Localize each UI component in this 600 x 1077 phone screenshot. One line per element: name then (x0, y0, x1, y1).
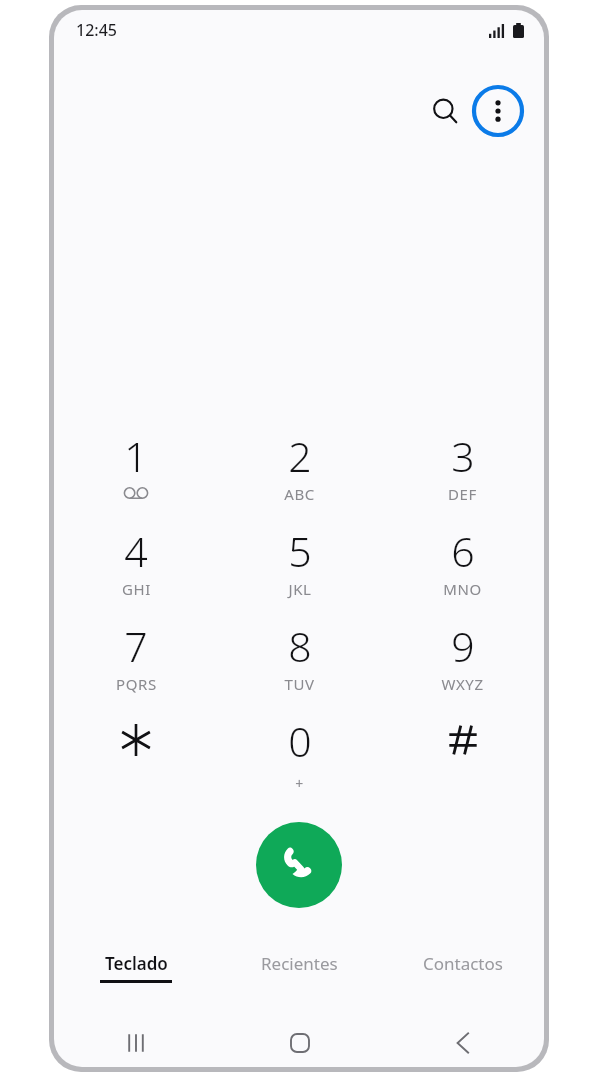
button[interactable]: More options (469, 82, 527, 140)
staticText: WXYZ (441, 674, 484, 694)
staticText: 12:45 (76, 19, 117, 41)
button[interactable] (54, 713, 218, 808)
button[interactable]: Back (381, 1020, 544, 1066)
button[interactable]: 7 (54, 618, 218, 713)
button[interactable]: 6 (381, 523, 544, 618)
button[interactable]: Search (421, 87, 469, 135)
button[interactable]: 5 (218, 523, 381, 618)
button[interactable]: 8 (218, 618, 381, 713)
staticText: PQRS (116, 674, 157, 694)
staticText: MNO (443, 579, 482, 599)
button[interactable]: 3 (381, 428, 544, 523)
staticText: GHI (122, 579, 151, 599)
button[interactable] (381, 713, 544, 808)
staticText: Recientes (261, 952, 338, 975)
staticText: 2 (288, 428, 312, 484)
button[interactable]: 2 (218, 428, 381, 523)
button[interactable]: 4 (54, 523, 218, 618)
button[interactable]: Recent apps (54, 1020, 218, 1066)
staticText: TUV (284, 674, 315, 694)
staticText: 3 (451, 428, 475, 484)
staticText: 6 (451, 523, 475, 579)
button[interactable]: Call (256, 822, 342, 908)
staticText: 8 (288, 618, 312, 674)
button[interactable]: Teclado (54, 948, 218, 1004)
button[interactable]: Recientes (218, 948, 381, 1004)
staticText: + (295, 774, 304, 793)
staticText: Contactos (423, 952, 503, 975)
button[interactable]: Home (218, 1020, 381, 1066)
staticText: 9 (451, 618, 475, 674)
staticText: 1 (124, 428, 148, 484)
button[interactable]: 0 (218, 713, 381, 808)
button[interactable]: 9 (381, 618, 544, 713)
staticText: Teclado (105, 952, 168, 975)
staticText: DEF (448, 484, 477, 504)
staticText: 7 (124, 618, 148, 674)
staticText: JKL (288, 579, 312, 599)
button[interactable]: Contactos (381, 948, 544, 1004)
button[interactable]: 1 (54, 428, 218, 523)
staticText: 4 (124, 523, 148, 579)
staticText: 5 (288, 523, 312, 579)
staticText: ABC (284, 484, 315, 504)
staticText: 0 (288, 713, 312, 769)
